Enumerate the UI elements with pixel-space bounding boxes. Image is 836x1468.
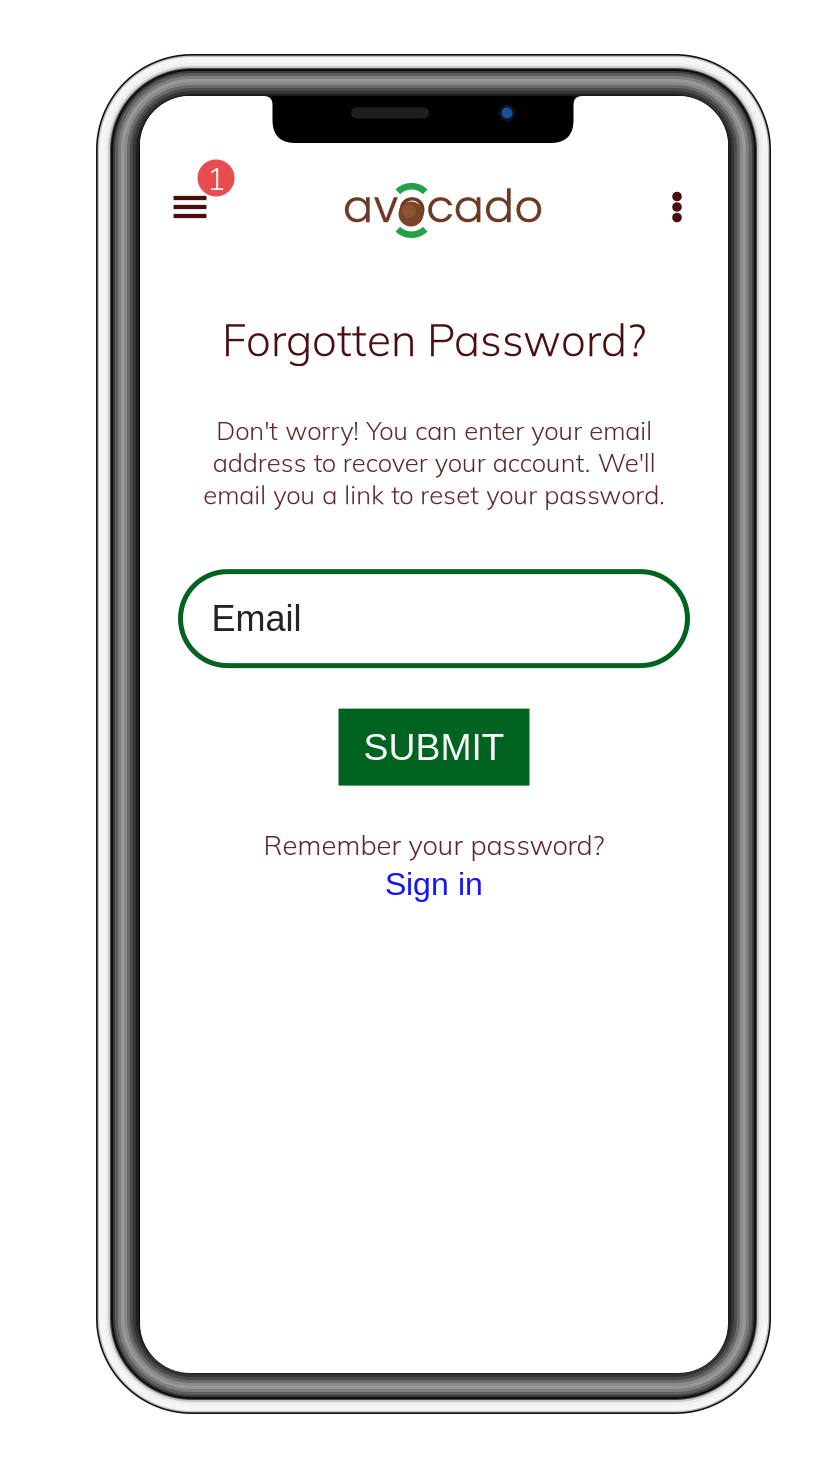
staticText: Remember your password? [263, 828, 604, 862]
staticText: Forgotten Password? [222, 312, 646, 367]
button[interactable]: Sign in [385, 866, 483, 902]
staticText: avocado [343, 181, 543, 233]
staticText: Email [211, 598, 301, 639]
staticText: 1 [206, 158, 225, 198]
button[interactable]: Menu [147, 136, 233, 238]
button[interactable]: SUBMIT [338, 709, 529, 786]
staticText: SUBMIT [363, 726, 504, 768]
staticText: Don't worry! You can enter your email ad… [203, 414, 665, 511]
staticText: Sign in [385, 866, 483, 902]
button[interactable]: More options [649, 161, 705, 253]
